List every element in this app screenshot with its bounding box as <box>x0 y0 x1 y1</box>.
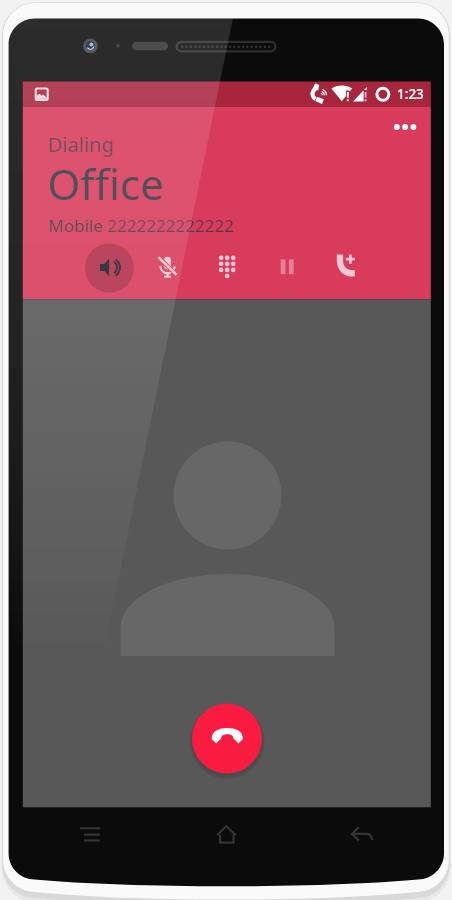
button[interactable]: Back <box>338 812 388 858</box>
button[interactable]: Dialpad <box>205 244 252 293</box>
button[interactable]: Speaker <box>85 244 134 293</box>
button[interactable]: Add call <box>324 244 371 293</box>
button[interactable]: More options <box>385 112 426 148</box>
button[interactable]: Mute microphone <box>145 244 192 293</box>
button[interactable]: Home <box>202 812 252 858</box>
button[interactable]: End call <box>192 703 262 773</box>
button[interactable]: Menu <box>65 812 115 858</box>
button[interactable]: Hold call <box>265 244 312 293</box>
